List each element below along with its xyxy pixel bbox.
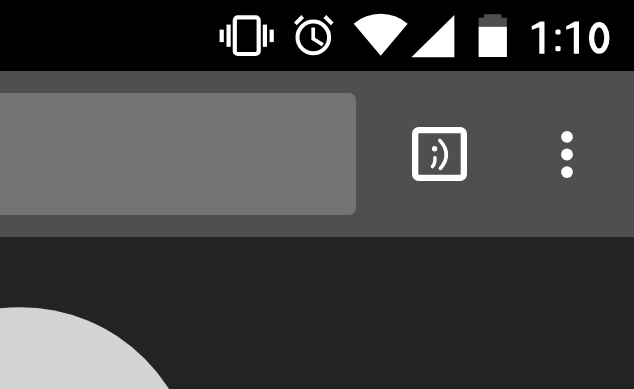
button[interactable]: Insert emoji	[400, 115, 478, 193]
other: 1:10	[528, 13, 612, 58]
button[interactable]: More options	[528, 115, 606, 193]
